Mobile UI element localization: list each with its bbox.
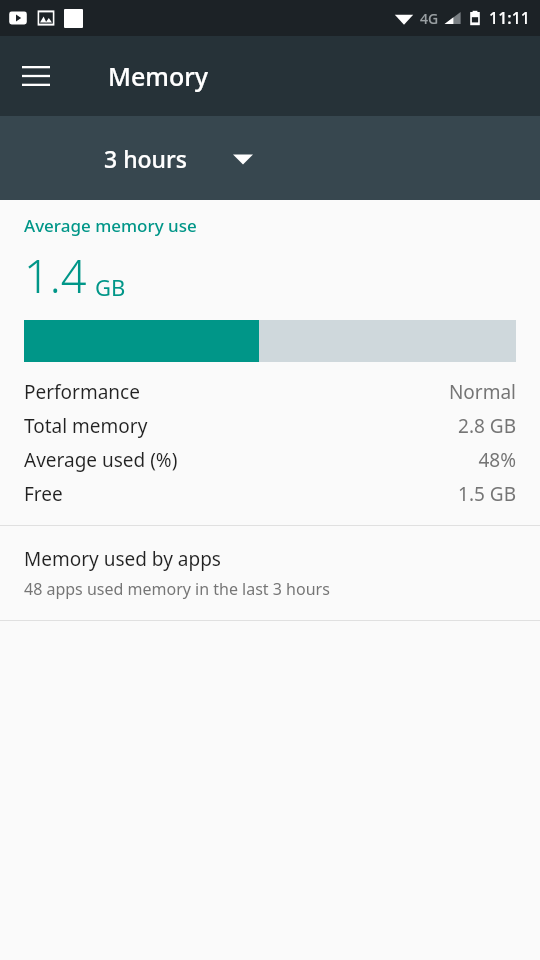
- button[interactable]: Open navigation drawer: [12, 52, 60, 100]
- staticText: 2.8 GB: [458, 413, 516, 439]
- staticText: 1.5 GB: [458, 481, 516, 507]
- button[interactable]: Memory used by apps: [0, 526, 540, 620]
- staticText: Average used (%): [24, 447, 178, 473]
- staticText: Normal: [448, 379, 516, 405]
- staticText: Free: [24, 481, 63, 507]
- staticText: Memory used by apps: [24, 546, 221, 572]
- staticText: 48%: [478, 447, 516, 473]
- staticText: Performance: [24, 379, 140, 405]
- staticText: 11:11: [489, 7, 530, 29]
- staticText: Average memory use: [24, 214, 197, 237]
- staticText: 3 hours: [104, 143, 187, 174]
- staticText: Total memory: [24, 413, 148, 439]
- staticText: 1.4: [24, 245, 87, 306]
- staticText: Memory: [108, 59, 209, 93]
- staticText: 48 apps used memory in the last 3 hours: [24, 578, 330, 600]
- button[interactable]: 3 hours: [96, 135, 261, 182]
- staticText: 4G: [420, 9, 439, 28]
- staticText: GB: [95, 272, 126, 302]
